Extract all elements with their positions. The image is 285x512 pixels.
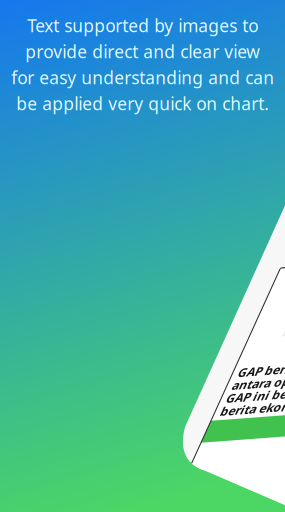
staticText: Text supported by images to provide dire… (11, 14, 274, 115)
